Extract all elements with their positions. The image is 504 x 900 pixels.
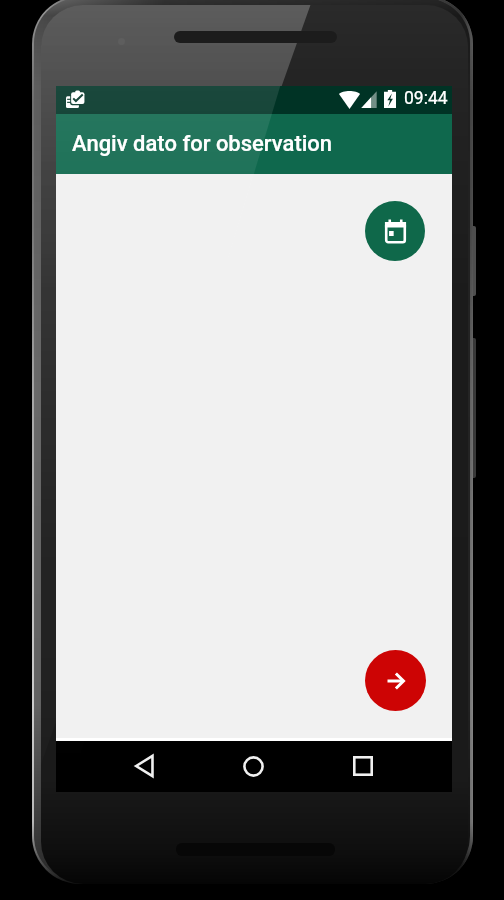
- staticText: Angiv dato for observation: [72, 131, 333, 157]
- button[interactable]: Back: [120, 742, 168, 790]
- staticText: 09:44: [404, 88, 448, 109]
- button[interactable]: Næste: [365, 650, 426, 711]
- button[interactable]: Vælg dato: [365, 201, 425, 261]
- button[interactable]: Recents: [339, 742, 387, 790]
- button[interactable]: Home: [229, 742, 277, 790]
